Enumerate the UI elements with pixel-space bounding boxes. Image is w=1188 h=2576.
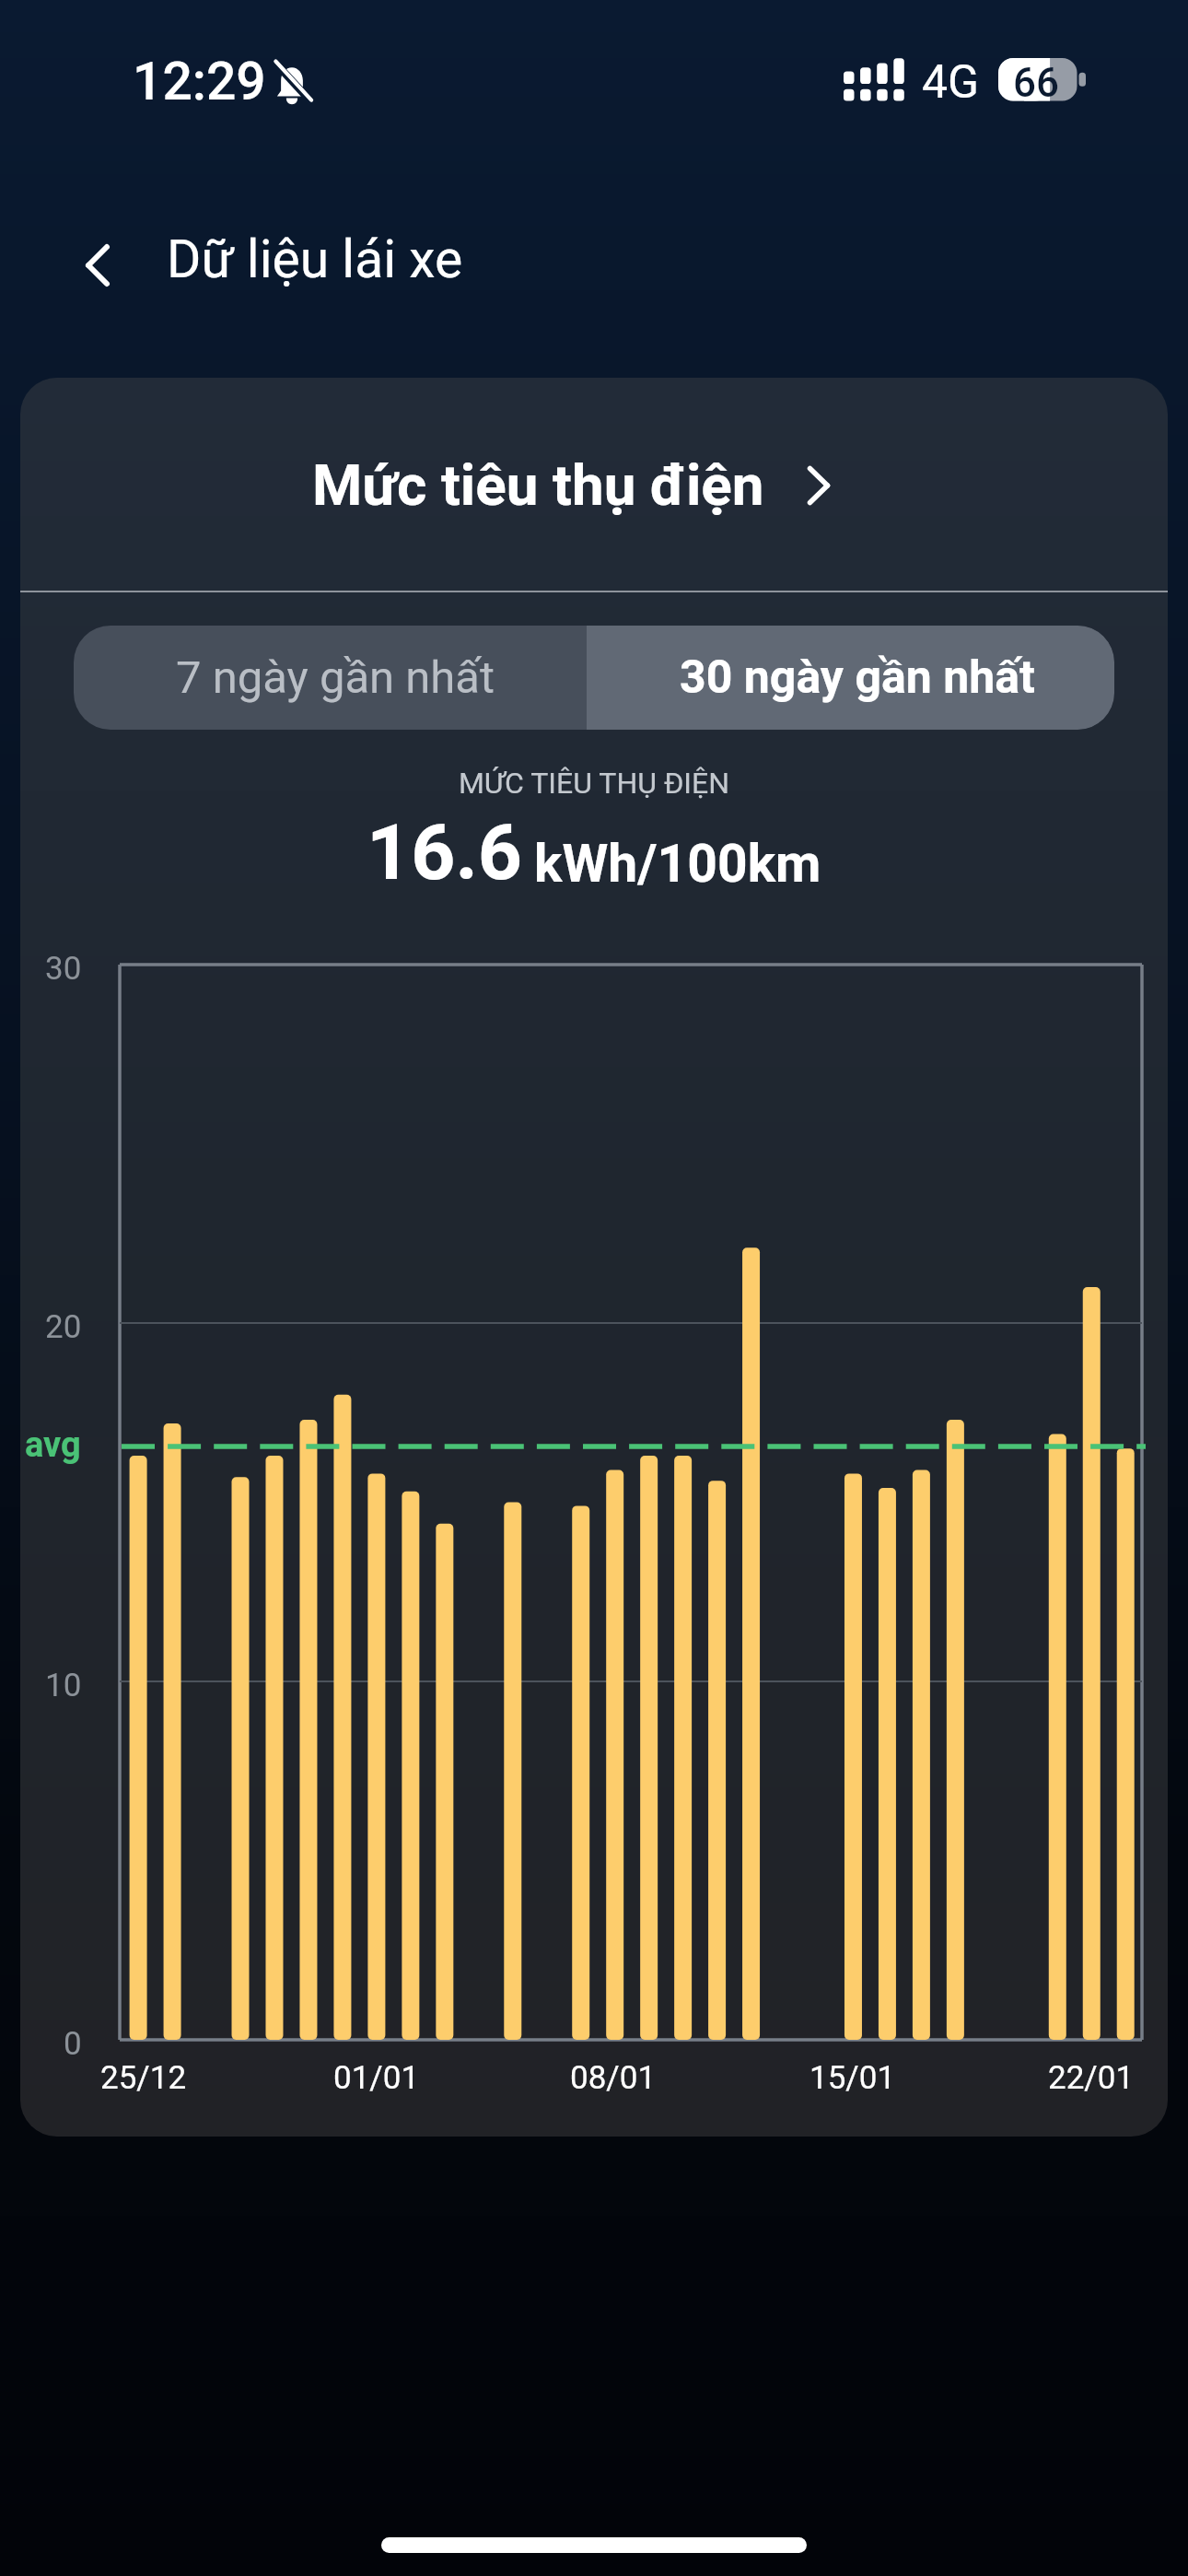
- staticText: Dữ liệu lái xe: [167, 228, 463, 290]
- staticText: 7 ngày gần nhất: [176, 651, 495, 704]
- button[interactable]: Back: [66, 234, 129, 297]
- staticText: Mức tiêu thụ điện: [312, 451, 764, 519]
- staticText: MỨC TIÊU THỤ ĐIỆN: [20, 766, 1168, 801]
- staticText: 20: [45, 1308, 82, 1346]
- button[interactable]: 30 ngày gần nhất: [587, 626, 1114, 730]
- staticText: 30 ngày gần nhất: [680, 650, 1035, 705]
- staticText: 01/01: [333, 2059, 420, 2097]
- staticText: 22/01: [1048, 2059, 1135, 2097]
- staticText: 4G: [922, 55, 980, 110]
- staticText: 10: [45, 1667, 82, 1704]
- staticText: 66: [1013, 59, 1060, 102]
- staticText: avg: [25, 1424, 81, 1466]
- staticText: 25/12: [100, 2059, 187, 2097]
- button[interactable]: Mức tiêu thụ điện: [20, 378, 1168, 591]
- staticText: 08/01: [570, 2059, 657, 2097]
- staticText: 30: [45, 950, 82, 988]
- button[interactable]: 7 ngày gần nhất: [74, 626, 587, 730]
- staticText: 16.6: [367, 807, 523, 897]
- staticText: 12:29: [133, 51, 266, 112]
- staticText: 15/01: [809, 2059, 896, 2097]
- staticText: kWh/100km: [534, 833, 821, 895]
- staticText: 0: [64, 2025, 82, 2063]
